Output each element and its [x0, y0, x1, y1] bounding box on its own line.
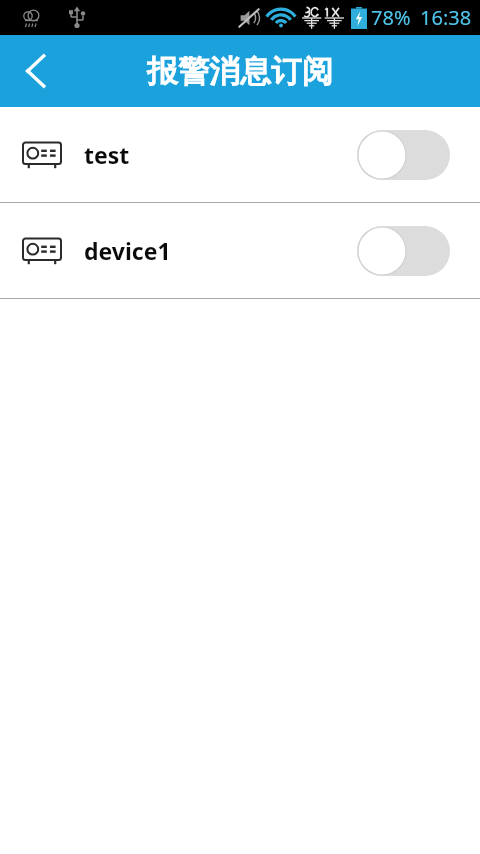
button[interactable]: Toggle subscription [357, 226, 450, 276]
staticText: test [84, 139, 130, 170]
staticText: 报警消息订阅 [147, 52, 333, 91]
button[interactable]: device1 [0, 203, 480, 298]
staticText: 16:38 [420, 4, 472, 31]
button[interactable]: Toggle subscription [357, 130, 450, 180]
staticText: device1 [84, 235, 171, 266]
button[interactable]: Back [0, 35, 72, 107]
staticText: 78% [371, 4, 411, 31]
button[interactable]: test [0, 107, 480, 202]
